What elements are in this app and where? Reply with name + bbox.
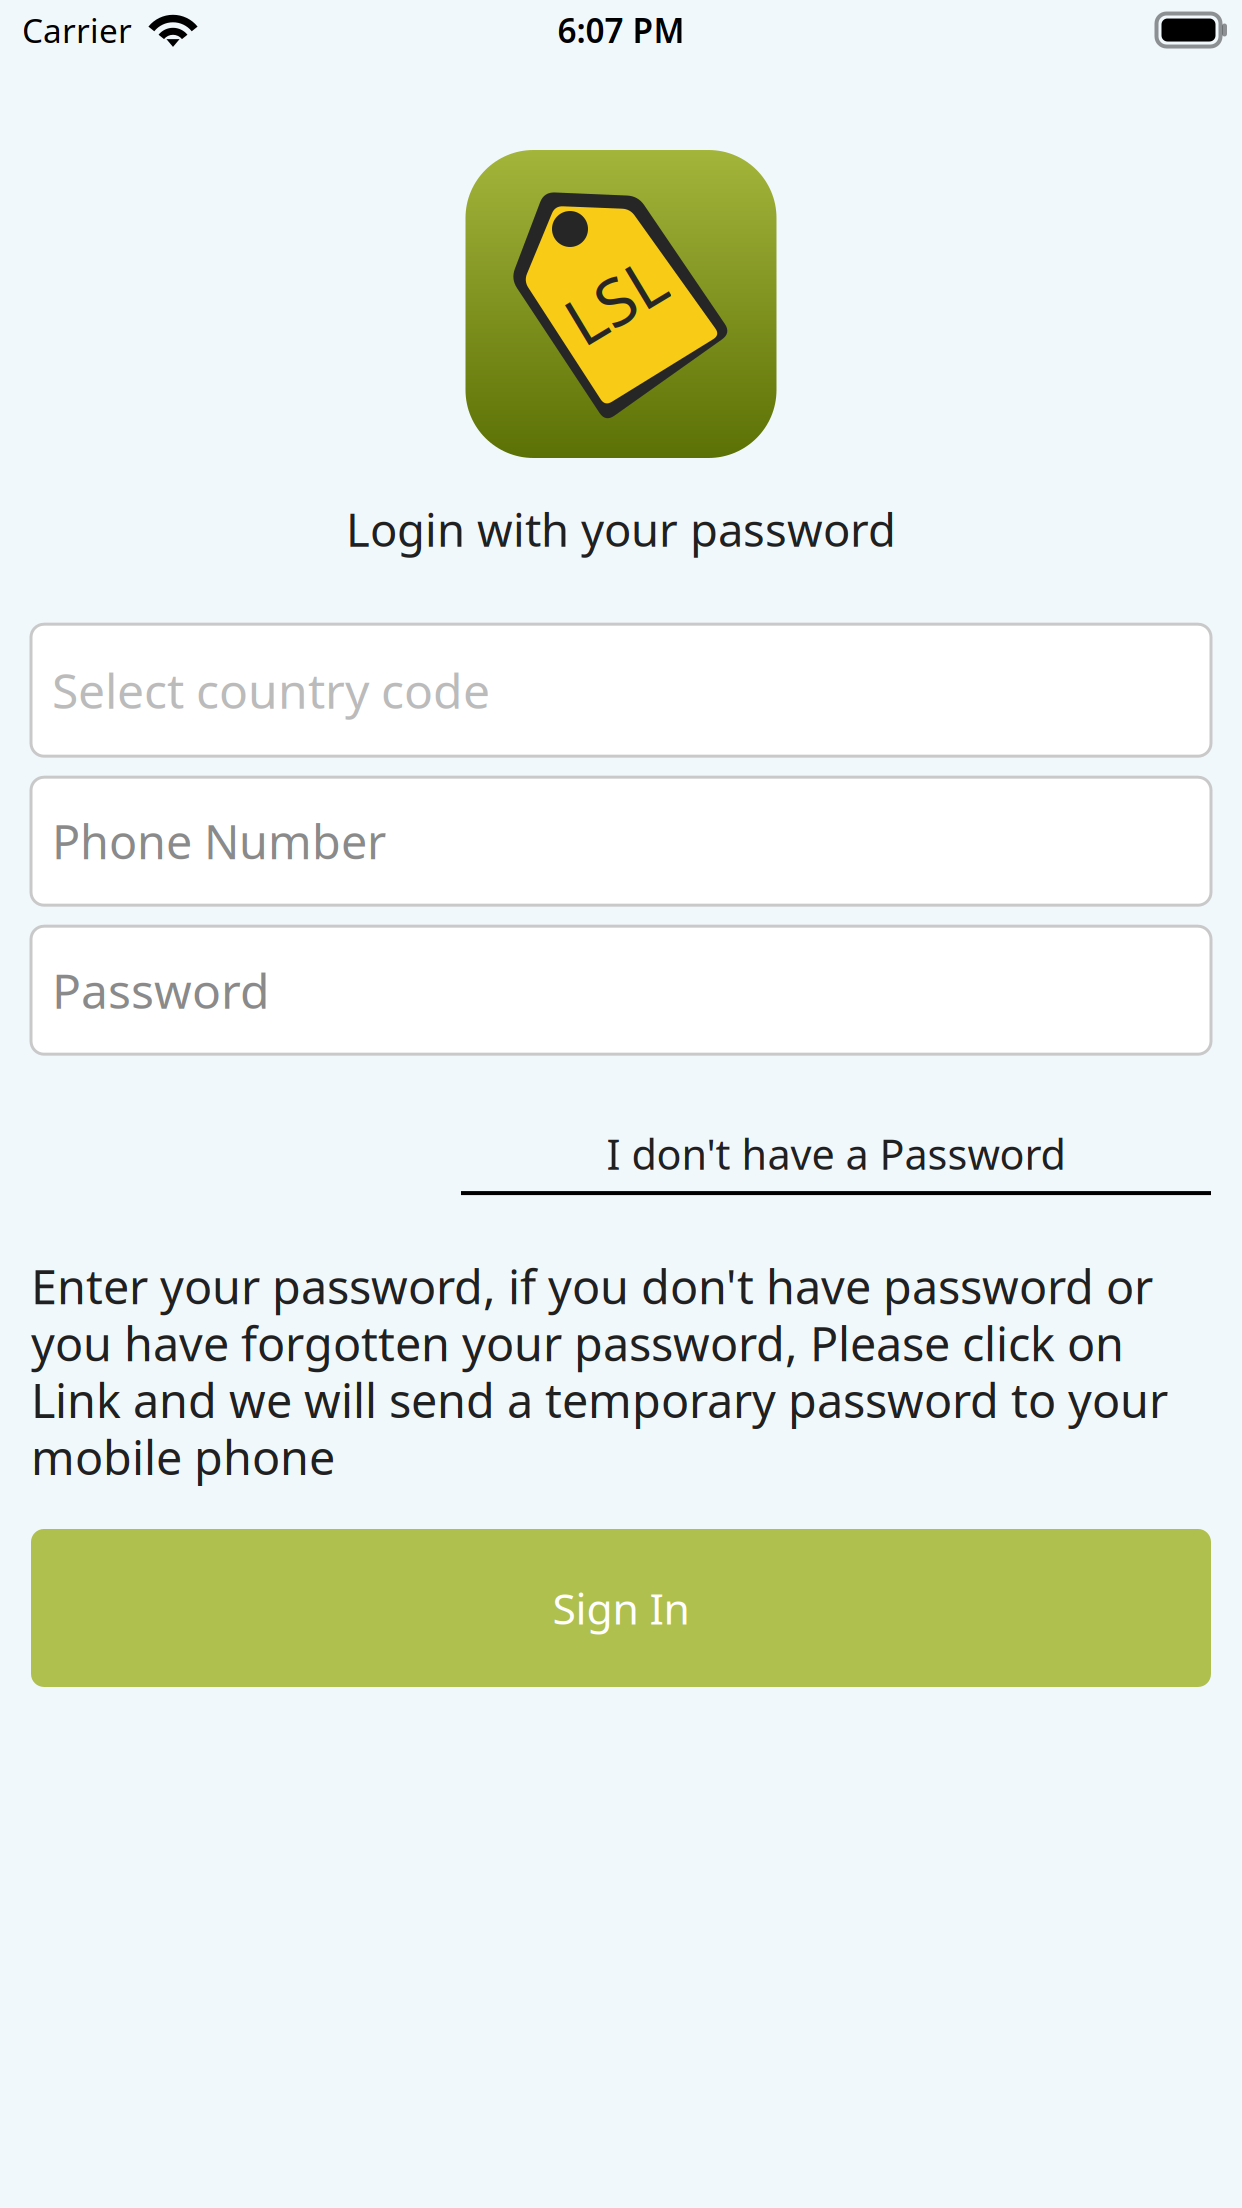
button[interactable]: I don't have a Password — [461, 1126, 1211, 1195]
staticText: Phone Number — [52, 810, 386, 872]
staticText: Password — [52, 958, 270, 1022]
button[interactable]: Phone Number — [31, 777, 1211, 905]
staticText: LSL — [563, 257, 667, 343]
staticText: Sign In — [552, 1580, 689, 1636]
staticText: Login with your password — [346, 499, 896, 559]
staticText: Carrier — [22, 8, 132, 52]
button[interactable]: Sign In — [31, 1529, 1211, 1687]
staticText: I don't have a Password — [606, 1126, 1065, 1181]
staticText: 6:07 PM — [557, 8, 684, 52]
staticText: Select country code — [52, 658, 490, 722]
button[interactable]: Password — [31, 926, 1211, 1054]
staticText: Enter your password, if you don't have p… — [31, 1255, 1168, 1488]
button[interactable]: Select country code — [31, 624, 1211, 756]
